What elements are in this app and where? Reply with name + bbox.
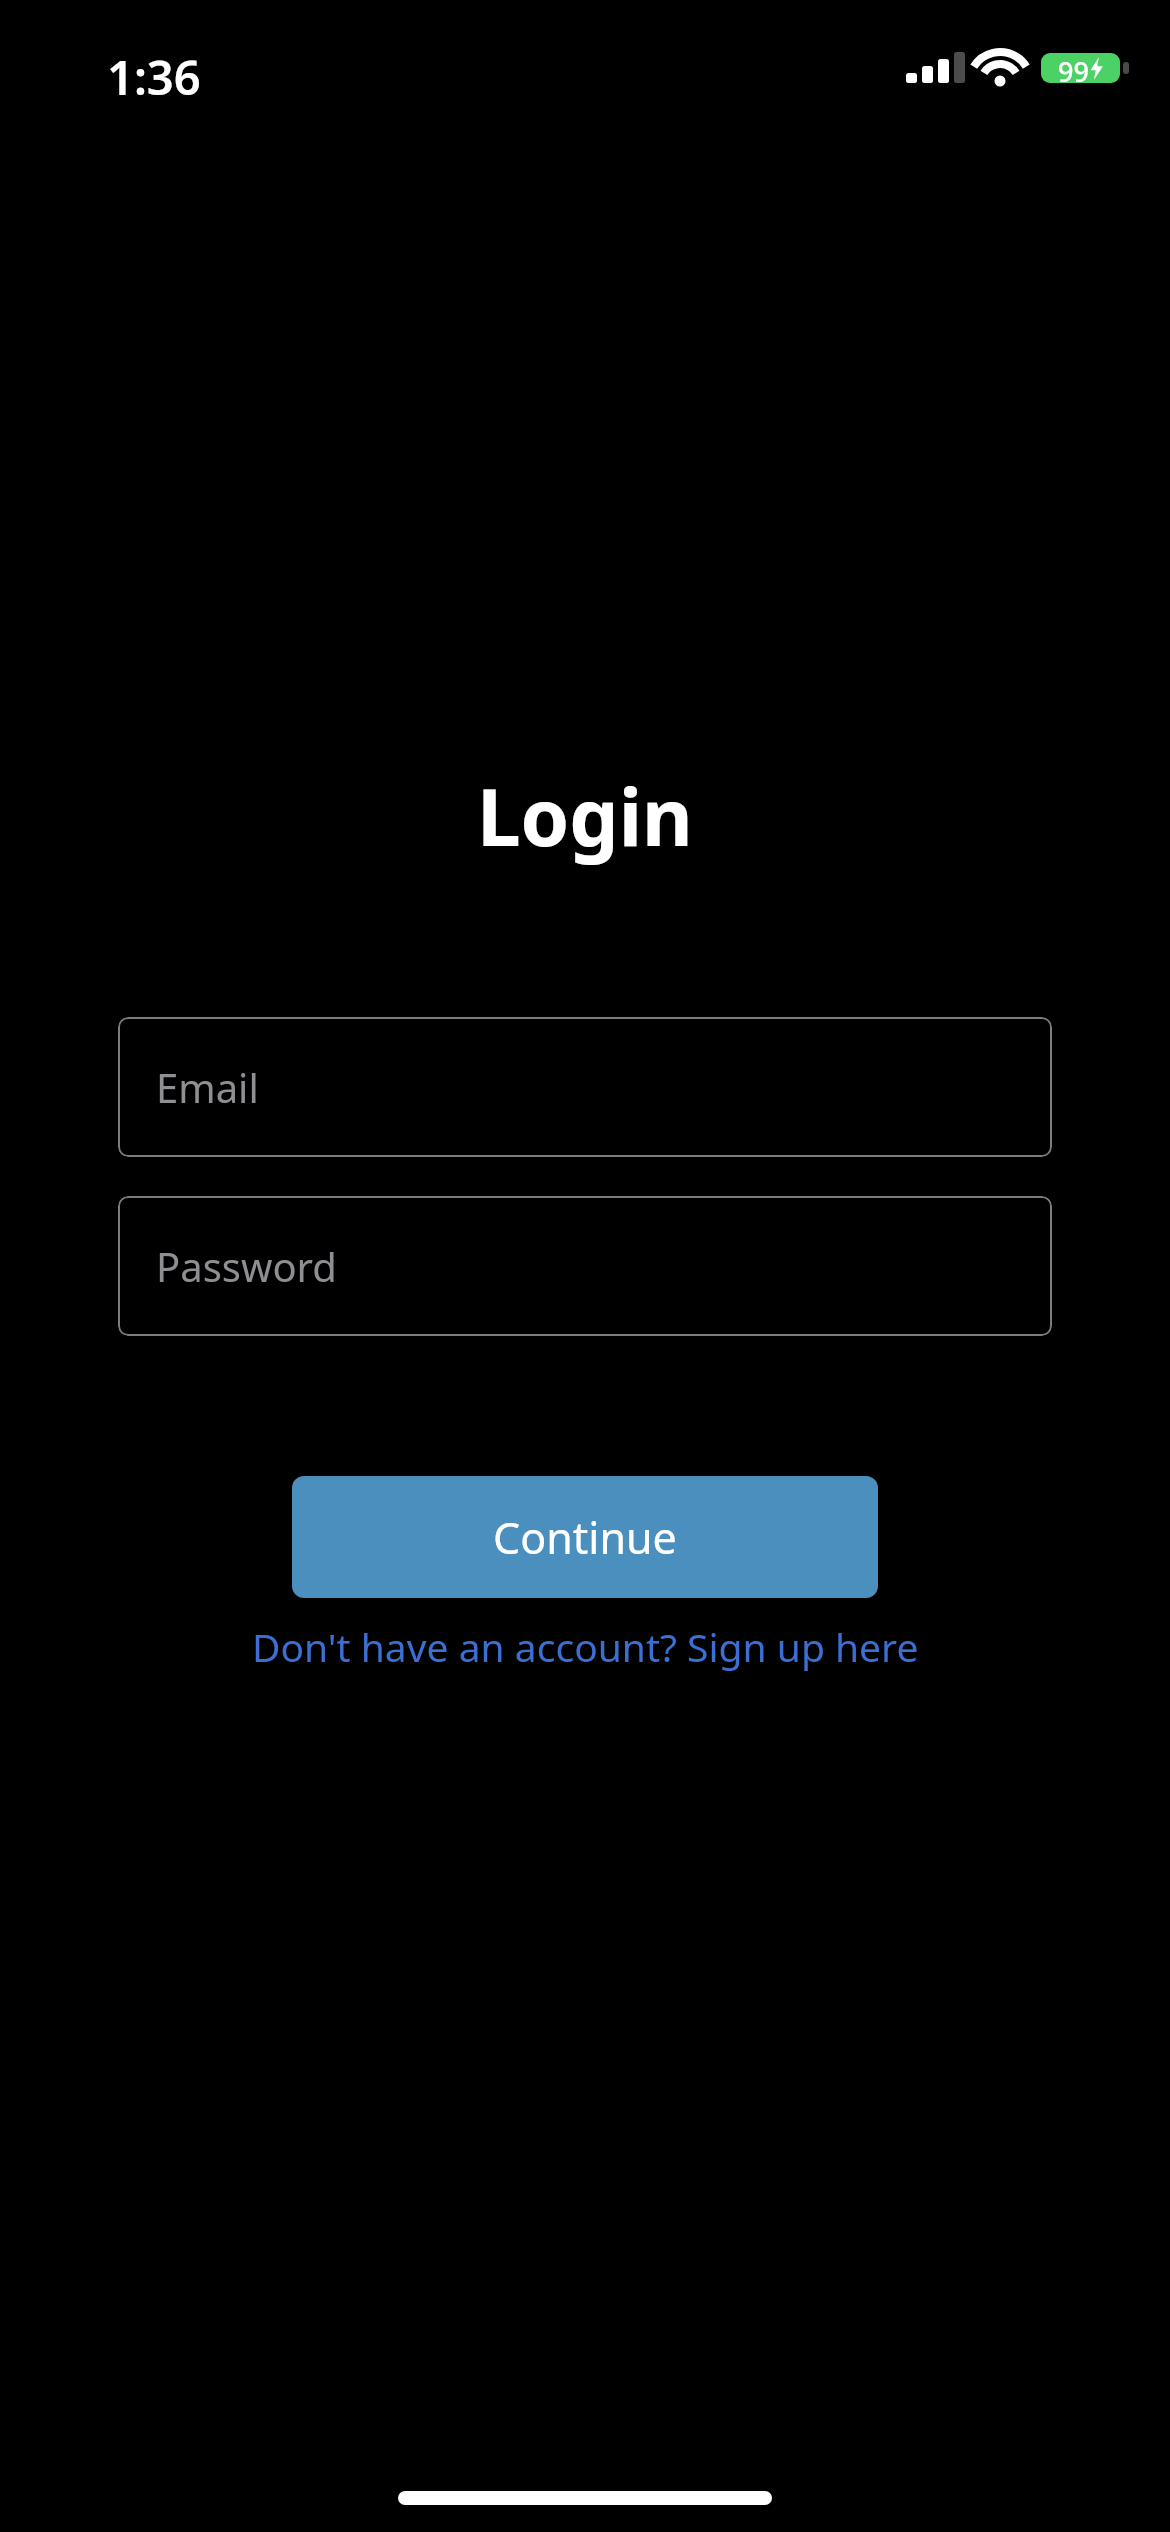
- staticText: Email: [156, 1060, 259, 1114]
- other: Wi-Fi: [973, 50, 1027, 86]
- button[interactable]: Continue: [292, 1476, 878, 1598]
- other: Battery 99 percent charging: [1041, 53, 1120, 83]
- staticText: 99: [1058, 53, 1089, 83]
- staticText: Login: [477, 763, 693, 869]
- other: Cellular signal: [906, 50, 966, 86]
- staticText: Don't have an account? Sign up here: [252, 1620, 919, 1673]
- staticText: Password: [156, 1239, 337, 1293]
- button[interactable]: Email: [118, 1017, 1052, 1157]
- button[interactable]: Don't have an account? Sign up here: [242, 1612, 929, 1681]
- staticText: 1:36: [107, 45, 201, 109]
- button[interactable]: Password: [118, 1196, 1052, 1336]
- staticText: Continue: [493, 1508, 677, 1567]
